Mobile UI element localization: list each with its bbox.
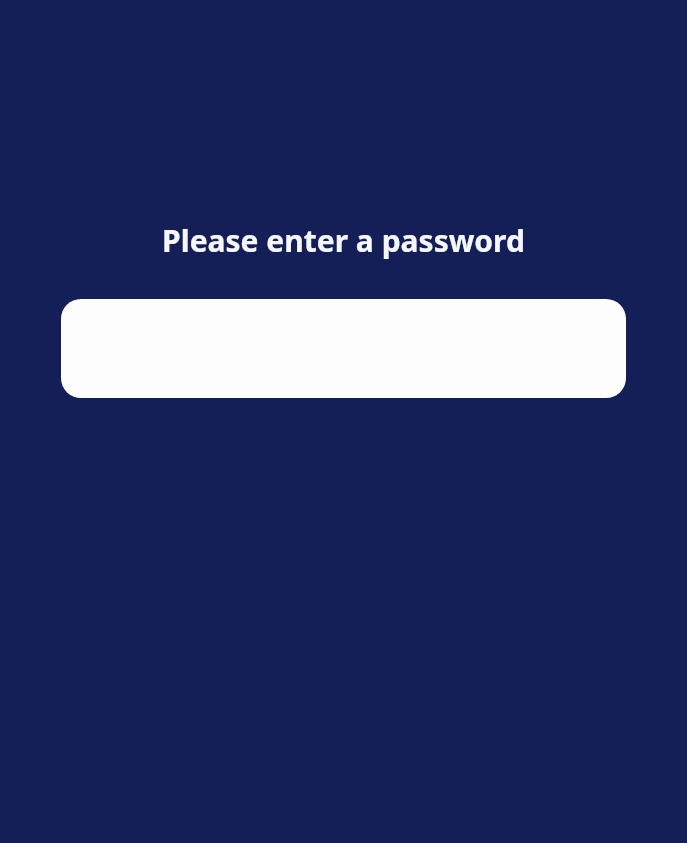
- button[interactable]: Password entry field: [61, 299, 626, 398]
- staticText: Please enter a password: [20, 220, 667, 261]
